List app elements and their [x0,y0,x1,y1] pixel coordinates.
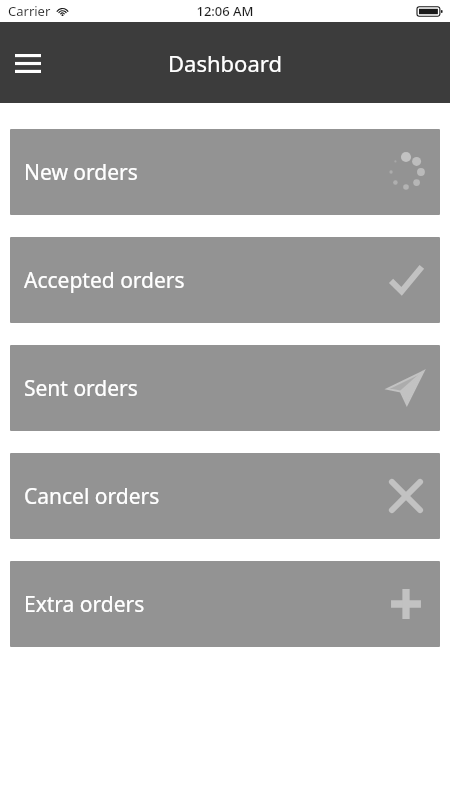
button[interactable]: New orders [10,129,440,215]
staticText: 12:06 AM [196,2,254,20]
staticText: Accepted orders [24,266,185,295]
staticText: Extra orders [24,590,145,619]
staticText: Carrier [8,2,51,20]
button[interactable]: Open navigation menu [6,41,50,85]
button[interactable]: Accepted orders [10,237,440,323]
button[interactable]: Cancel orders [10,453,440,539]
staticText: Sent orders [24,374,138,403]
staticText: New orders [24,158,138,187]
button[interactable]: Extra orders [10,561,440,647]
staticText: Dashboard [168,48,282,78]
button[interactable]: Sent orders [10,345,440,431]
staticText: Cancel orders [24,482,160,511]
